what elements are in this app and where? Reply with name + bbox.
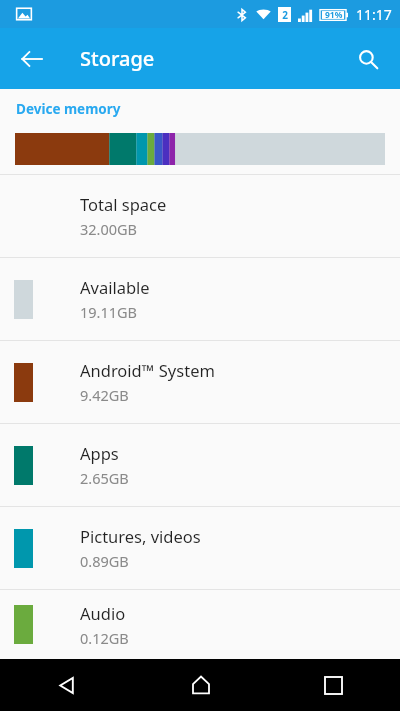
staticText: 91% bbox=[325, 9, 343, 21]
button[interactable]: Audio bbox=[0, 590, 400, 659]
button[interactable]: Pictures, videos bbox=[0, 507, 400, 589]
staticText: Available bbox=[80, 276, 150, 298]
staticText: Audio bbox=[80, 602, 126, 624]
button[interactable]: Recents bbox=[267, 659, 400, 711]
button[interactable]: Back bbox=[0, 659, 134, 711]
staticText: Total space bbox=[80, 193, 167, 215]
button[interactable]: Back bbox=[8, 35, 56, 83]
button[interactable]: Android™ System bbox=[0, 341, 400, 423]
staticText: 32.00GB bbox=[80, 219, 138, 239]
staticText: Storage bbox=[80, 45, 155, 72]
staticText: 11:17 bbox=[356, 5, 392, 24]
staticText: 0.89GB bbox=[80, 551, 129, 571]
staticText: 2 bbox=[282, 8, 288, 22]
button[interactable]: Available bbox=[0, 258, 400, 340]
button[interactable]: Total space bbox=[0, 175, 400, 257]
button[interactable]: Search bbox=[344, 35, 392, 83]
staticText: Device memory bbox=[16, 100, 121, 118]
staticText: 0.12GB bbox=[80, 628, 129, 648]
staticText: Android™ System bbox=[80, 359, 215, 381]
staticText: Pictures, videos bbox=[80, 525, 201, 547]
button[interactable]: Home bbox=[134, 659, 267, 711]
staticText: 19.11GB bbox=[80, 302, 138, 322]
staticText: Apps bbox=[80, 442, 119, 464]
staticText: 2.65GB bbox=[80, 468, 129, 488]
button[interactable]: Apps bbox=[0, 424, 400, 506]
staticText: 9.42GB bbox=[80, 385, 129, 405]
